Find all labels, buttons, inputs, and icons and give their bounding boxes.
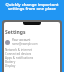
staticText: name@example.com	[12, 42, 38, 46]
staticText: Quickly change important settings from o…	[2, 2, 62, 12]
staticText: Battery	[5, 60, 16, 64]
button[interactable]: Connected devices	[4, 52, 60, 56]
staticText: Display	[5, 64, 16, 68]
staticText: Apps & notifications	[5, 56, 34, 60]
button[interactable]: Apps & notifications	[4, 56, 60, 60]
button[interactable]: Your account	[5, 38, 60, 46]
staticText: Your account	[12, 38, 31, 42]
button[interactable]: Network & internet	[4, 48, 60, 52]
button[interactable]: Battery	[4, 60, 60, 64]
button[interactable]: Display	[4, 64, 60, 68]
staticText: Network & internet	[5, 48, 33, 52]
staticText: Settings	[5, 29, 26, 36]
staticText: Connected devices	[5, 52, 32, 56]
